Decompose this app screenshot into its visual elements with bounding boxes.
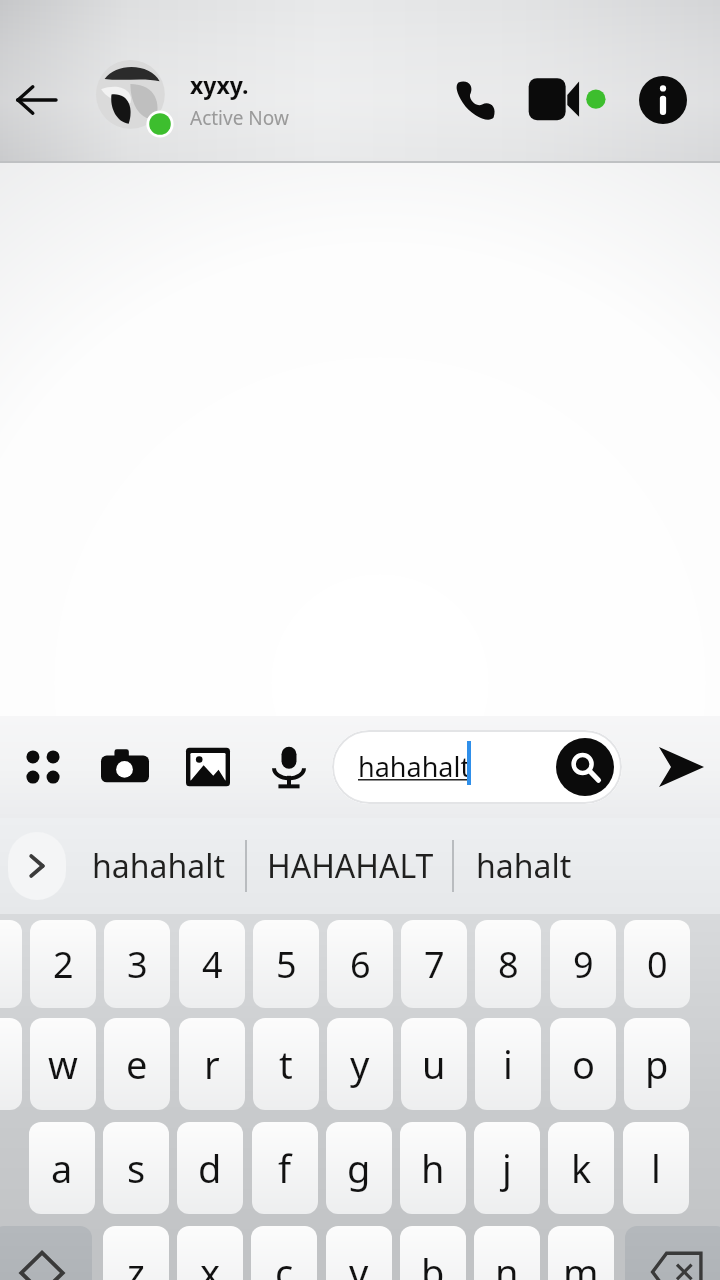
- button[interactable]: a: [29, 1122, 95, 1214]
- button[interactable]: x: [177, 1226, 243, 1280]
- button[interactable]: e: [104, 1018, 170, 1110]
- staticText: l: [651, 1142, 661, 1194]
- staticText: p: [645, 1038, 669, 1090]
- button[interactable]: 8: [475, 920, 541, 1008]
- button[interactable]: More options: [10, 734, 76, 800]
- staticText: n: [495, 1246, 519, 1280]
- staticText: y: [350, 1038, 370, 1090]
- button[interactable]: Gallery: [178, 737, 238, 797]
- button[interactable]: Search: [556, 738, 614, 796]
- staticText: HAHAHALT: [267, 844, 434, 888]
- button[interactable]: l: [623, 1122, 689, 1214]
- button[interactable]: t: [253, 1018, 319, 1110]
- staticText: s: [127, 1142, 146, 1194]
- button[interactable]: u: [401, 1018, 467, 1110]
- button[interactable]: 3: [104, 920, 170, 1008]
- staticText: xyxy.: [190, 69, 249, 100]
- staticText: j: [502, 1142, 512, 1194]
- button[interactable]: Send: [642, 728, 720, 806]
- staticText: a: [51, 1142, 73, 1194]
- staticText: i: [503, 1038, 513, 1090]
- staticText: 7: [424, 940, 445, 989]
- button[interactable]: Audio call: [438, 62, 514, 138]
- staticText: x: [200, 1246, 221, 1280]
- button[interactable]: s: [103, 1122, 169, 1214]
- staticText: 0: [647, 940, 668, 989]
- button[interactable]: Voice message: [260, 738, 318, 796]
- button[interactable]: h: [400, 1122, 466, 1214]
- button[interactable]: k: [548, 1122, 614, 1214]
- button[interactable]: 9: [550, 920, 616, 1008]
- button[interactable]: xyxy.: [190, 69, 289, 131]
- staticText: r: [204, 1038, 220, 1090]
- staticText: 4: [202, 940, 223, 989]
- button[interactable]: hahahalt: [332, 730, 622, 804]
- button[interactable]: i: [475, 1018, 541, 1110]
- staticText: k: [571, 1142, 592, 1194]
- button[interactable]: Camera: [94, 736, 156, 798]
- staticText: g: [347, 1142, 371, 1194]
- button[interactable]: 1: [0, 920, 22, 1008]
- button[interactable]: y: [327, 1018, 393, 1110]
- button[interactable]: 6: [327, 920, 393, 1008]
- button[interactable]: Back: [0, 64, 72, 136]
- staticText: b: [421, 1246, 445, 1280]
- button[interactable]: 7: [401, 920, 467, 1008]
- staticText: 6: [350, 940, 371, 989]
- staticText: Active Now: [190, 105, 289, 131]
- staticText: 8: [498, 940, 519, 989]
- staticText: 3: [127, 940, 148, 989]
- staticText: 9: [573, 940, 594, 989]
- button[interactable]: Profile photo: [96, 60, 176, 140]
- staticText: h: [421, 1142, 445, 1194]
- button[interactable]: j: [474, 1122, 540, 1214]
- button[interactable]: o: [550, 1018, 616, 1110]
- button[interactable]: n: [474, 1226, 540, 1280]
- staticText: z: [127, 1246, 145, 1280]
- staticText: c: [275, 1246, 294, 1280]
- button[interactable]: q: [0, 1018, 22, 1110]
- button[interactable]: 4: [179, 920, 245, 1008]
- button[interactable]: 5: [253, 920, 319, 1008]
- button[interactable]: r: [179, 1018, 245, 1110]
- button[interactable]: hahahalt: [92, 844, 225, 888]
- staticText: 2: [53, 940, 74, 989]
- staticText: hahahalt: [92, 844, 225, 888]
- staticText: hahalt: [476, 844, 572, 888]
- button[interactable]: m: [548, 1226, 614, 1280]
- staticText: e: [126, 1038, 148, 1090]
- button[interactable]: Info: [624, 61, 702, 139]
- staticText: d: [198, 1142, 222, 1194]
- staticText: 5: [276, 940, 297, 989]
- button[interactable]: 0: [624, 920, 690, 1008]
- button[interactable]: HAHAHALT: [267, 844, 434, 888]
- button[interactable]: f: [252, 1122, 318, 1214]
- staticText: f: [278, 1142, 292, 1194]
- button[interactable]: More suggestions: [8, 832, 66, 900]
- button[interactable]: Backspace: [625, 1226, 720, 1280]
- staticText: w: [48, 1038, 78, 1090]
- button[interactable]: c: [251, 1226, 317, 1280]
- button[interactable]: hahalt: [476, 844, 572, 888]
- button[interactable]: z: [103, 1226, 169, 1280]
- button[interactable]: w: [30, 1018, 96, 1110]
- button[interactable]: p: [624, 1018, 690, 1110]
- staticText: v: [349, 1246, 369, 1280]
- button[interactable]: g: [326, 1122, 392, 1214]
- button[interactable]: Video call: [514, 45, 624, 155]
- staticText: o: [572, 1038, 595, 1090]
- button[interactable]: b: [400, 1226, 466, 1280]
- button[interactable]: d: [177, 1122, 243, 1214]
- staticText: m: [563, 1246, 599, 1280]
- staticText: hahahalt: [358, 748, 471, 785]
- button[interactable]: 2: [30, 920, 96, 1008]
- button[interactable]: v: [326, 1226, 392, 1280]
- staticText: u: [422, 1038, 446, 1090]
- button[interactable]: Shift: [0, 1226, 92, 1280]
- staticText: t: [279, 1038, 293, 1090]
